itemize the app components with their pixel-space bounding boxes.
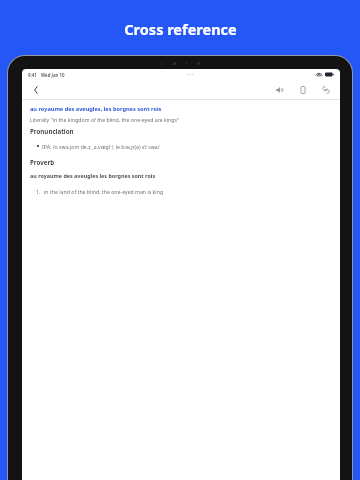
button[interactable]: Copy link xyxy=(319,83,333,97)
staticText: IPA: /o swa.jom de.z‿a.vœɡl | le bɔʁ.ɲ(ə… xyxy=(42,143,160,150)
staticText: Literally "in the kingdom of the blind, … xyxy=(30,116,180,123)
staticText: 9:41 xyxy=(28,72,37,78)
button[interactable]: Pronounce xyxy=(273,83,287,97)
staticText: Wed Jan 10 xyxy=(41,72,65,78)
staticText: au royaume des aveugles les borgnes sont… xyxy=(30,172,156,179)
staticText: 1. xyxy=(36,188,41,195)
button[interactable]: au royaume des aveugles, les borgnes son… xyxy=(30,105,162,113)
staticText: • • • xyxy=(187,72,194,77)
button[interactable]: Back xyxy=(29,83,43,97)
staticText: Pronunciation xyxy=(30,127,74,135)
staticText: in the land of the blind, the one-eyed m… xyxy=(44,188,164,195)
button[interactable]: Open in app xyxy=(296,83,310,97)
staticText: Proverb xyxy=(30,158,55,166)
staticText: Cross reference xyxy=(124,19,237,39)
